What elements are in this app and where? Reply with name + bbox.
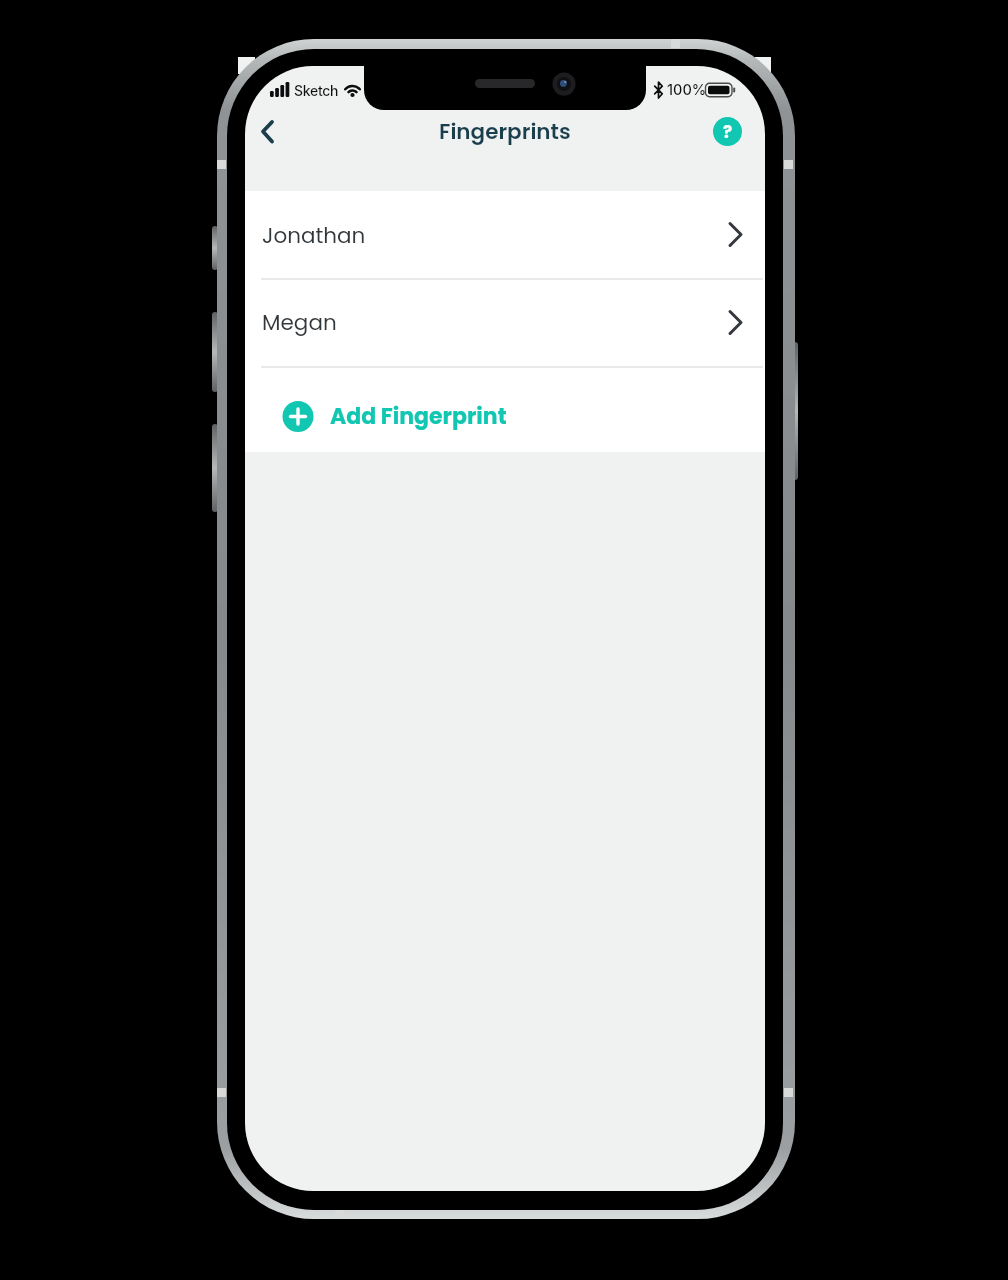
staticText: Add Fingerprint [330,401,507,432]
button[interactable]: Add Fingerprint [245,367,765,452]
staticText: Sketch [294,82,339,99]
staticText: Megan [262,307,337,337]
button[interactable] [249,112,293,152]
staticText: Fingerprints [439,116,571,146]
staticText: ? [723,120,733,144]
staticText: 100% [667,81,707,99]
button[interactable]: Megan [245,278,765,365]
button[interactable]: Jonathan [245,191,765,278]
staticText: Jonathan [262,220,366,250]
button[interactable]: ? [713,117,742,146]
